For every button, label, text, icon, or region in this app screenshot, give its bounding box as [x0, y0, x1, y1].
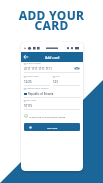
button[interactable]: Back — [21, 52, 83, 62]
staticText: Expiry date — [27, 75, 39, 78]
staticText: 12/25 — [24, 80, 32, 84]
staticText: 123 — [53, 80, 58, 84]
staticText: Add card — [47, 126, 58, 129]
staticText: ZIP Code — [27, 99, 37, 102]
staticText: ADD YOUR — [0, 7, 103, 23]
staticText: Credit card is successfully added — [29, 115, 66, 118]
staticText: Card Number — [27, 62, 41, 65]
staticText: Issuing bank country — [27, 87, 49, 90]
staticText: 10115 — [24, 104, 32, 108]
staticText: CVV — [56, 75, 61, 78]
button[interactable]: Back — [23, 54, 29, 60]
staticText: Add card — [45, 55, 60, 60]
button[interactable]: Add card — [24, 123, 80, 131]
staticText: Republic of Estonia — [28, 92, 54, 96]
button[interactable]: Credit card is successfully added — [24, 114, 80, 118]
button[interactable]: Scan card — [74, 66, 80, 71]
staticText: 4111 1111 1111 1111 — [24, 67, 52, 71]
staticText: CARD — [0, 17, 103, 33]
